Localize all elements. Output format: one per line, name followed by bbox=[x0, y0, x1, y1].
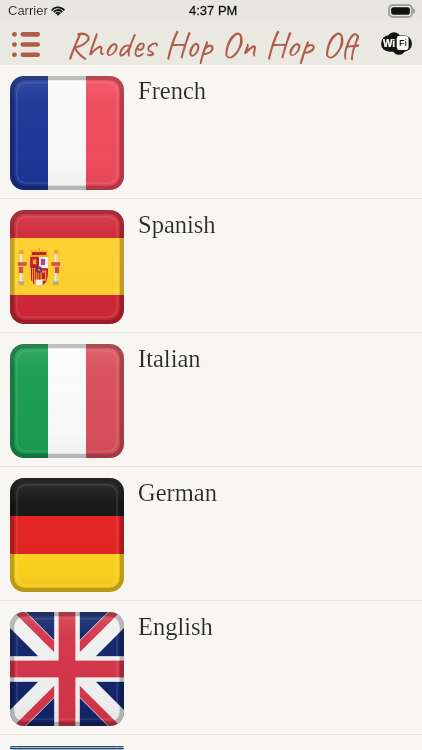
staticText: Fi bbox=[399, 38, 407, 48]
staticText: Rhodes Hop On Hop Off bbox=[66, 21, 359, 64]
staticText: English bbox=[138, 613, 213, 640]
staticText: Carrier bbox=[8, 3, 48, 18]
button[interactable]: Italian bbox=[0, 333, 422, 466]
button[interactable]: French bbox=[0, 65, 422, 198]
staticText: Italian bbox=[138, 345, 201, 372]
button[interactable]: English bbox=[0, 601, 422, 734]
button[interactable]: Greek bbox=[0, 735, 422, 750]
button[interactable]: WiFi bbox=[370, 22, 422, 65]
staticText: German bbox=[138, 479, 217, 506]
staticText: French bbox=[138, 77, 207, 104]
staticText: 4:37 PM bbox=[189, 3, 238, 18]
staticText: Spanish bbox=[138, 211, 216, 238]
staticText: Wi bbox=[383, 38, 396, 49]
button[interactable]: Spanish bbox=[0, 199, 422, 332]
button[interactable]: German bbox=[0, 467, 422, 600]
button[interactable]: Menu bbox=[0, 22, 52, 65]
